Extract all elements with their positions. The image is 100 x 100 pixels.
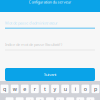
button[interactable]: h [56,97,64,100]
staticText: p [94,85,97,92]
button[interactable]: a [6,97,14,100]
button[interactable]: o [81,85,89,93]
button[interactable]: s [16,97,24,100]
staticText: h [59,98,62,100]
button[interactable]: y [51,85,59,93]
button[interactable]: u [61,85,69,93]
staticText: o [84,85,87,92]
button[interactable]: j [66,97,74,100]
staticText: Suivant [44,72,56,77]
staticText: y [54,85,57,92]
button[interactable]: g [46,97,54,100]
button[interactable]: i [71,85,79,93]
staticText: k [79,98,82,100]
button[interactable]: t [41,85,49,93]
button[interactable]: w [11,85,19,93]
staticText: Indice de mot de passe (facultatif) [5,42,62,47]
staticText: q [3,85,6,92]
button[interactable]: q [1,85,8,93]
staticText: w [13,85,17,92]
button[interactable]: d [26,97,34,100]
button[interactable]: e [21,85,29,93]
staticText: l [90,98,91,100]
staticText: e [23,85,26,92]
button[interactable]: f [36,97,44,100]
staticText: Mot de passe d'administrateur [5,20,58,26]
staticText: Configuration du serveur [28,0,71,5]
button[interactable]: p [91,85,99,93]
staticText: d [28,98,31,100]
button[interactable]: l [86,97,94,100]
button[interactable]: k [76,97,84,100]
staticText: u [64,85,67,92]
staticText: f [39,98,41,100]
staticText: r [34,85,36,92]
staticText: i [75,85,76,92]
button[interactable]: r [31,85,39,93]
button[interactable]: Suivant [5,68,95,81]
staticText: t [44,85,46,92]
